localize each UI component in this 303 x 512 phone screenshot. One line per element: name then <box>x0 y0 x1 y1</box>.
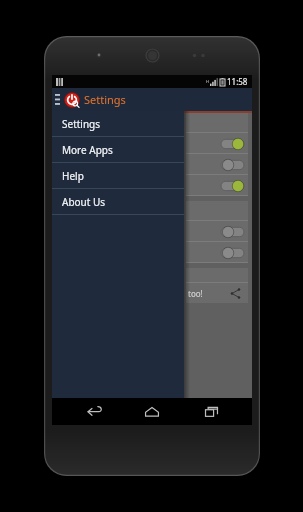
staticText: More Apps <box>62 143 113 157</box>
staticText: About Us <box>62 195 106 209</box>
button[interactable]: More Apps <box>52 137 184 163</box>
button[interactable]: Back <box>77 398 111 425</box>
button[interactable] <box>186 242 248 263</box>
button[interactable]: About Us <box>52 189 184 215</box>
button[interactable]: Home <box>135 398 169 425</box>
button[interactable]: too! <box>186 283 248 303</box>
staticText: Help <box>62 169 84 183</box>
button[interactable]: Recent apps <box>194 398 228 425</box>
staticText: H <box>206 79 209 84</box>
button[interactable] <box>186 133 248 154</box>
staticText: too! <box>188 288 203 299</box>
staticText: Settings <box>84 92 126 107</box>
button[interactable] <box>186 175 248 196</box>
staticText: 11:58 <box>227 76 248 87</box>
button[interactable] <box>186 113 248 133</box>
button[interactable]: Settings <box>52 111 184 137</box>
button[interactable]: Open navigation drawer <box>52 88 63 111</box>
button[interactable] <box>186 201 248 221</box>
button[interactable] <box>186 154 248 175</box>
staticText: Settings <box>62 117 101 131</box>
button[interactable] <box>186 221 248 242</box>
button[interactable]: Help <box>52 163 184 189</box>
other: Share <box>229 287 242 300</box>
